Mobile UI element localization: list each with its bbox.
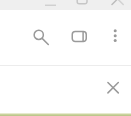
- button[interactable]: Search: [27, 23, 51, 47]
- button[interactable]: Close: [101, 76, 125, 100]
- button[interactable]: More options: [103, 23, 127, 47]
- button[interactable]: Switch tabs: [67, 23, 91, 47]
